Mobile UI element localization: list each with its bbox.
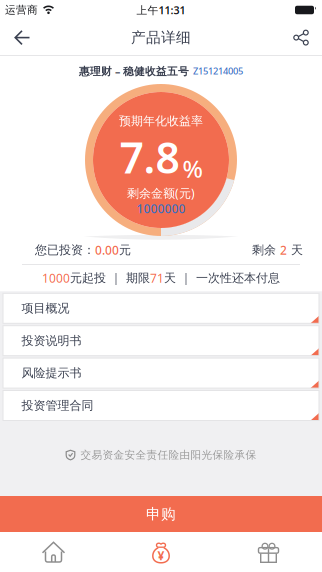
staticText: 交易资金安全责任险由阳光保险承保 [80, 448, 256, 462]
staticText: 运营商 [5, 3, 38, 16]
staticText: 2 [280, 242, 287, 258]
staticText: 1000000 [136, 200, 185, 216]
staticText: 0.00 [95, 242, 119, 258]
staticText: 申购 [146, 505, 176, 523]
staticText: 7.8 [119, 129, 179, 185]
button[interactable]: 投资管理合同 [3, 390, 319, 420]
staticText: 项目概况 [21, 301, 69, 316]
staticText: 1000 [42, 270, 70, 286]
button[interactable]: Share [293, 21, 322, 55]
button[interactable]: 申购 [0, 496, 322, 532]
staticText: 您已投资： [35, 243, 95, 257]
staticText: 剩余 [252, 243, 280, 257]
button[interactable]: 理财 [107, 532, 215, 572]
staticText: 惠理财 – 稳健收益五号 [79, 64, 189, 78]
staticText: 上午11:31 [136, 3, 185, 17]
staticText: 元 [119, 243, 131, 257]
staticText: 天 [287, 243, 303, 257]
staticText: 投资说明书 [21, 333, 81, 348]
staticText: ¥ [157, 547, 164, 563]
staticText: 剩余金额(元) [127, 185, 195, 201]
button[interactable]: 风险提示书 [3, 358, 319, 388]
button[interactable]: 投资说明书 [3, 326, 319, 356]
staticText: 风险提示书 [21, 366, 81, 380]
staticText: 预期年化收益率 [119, 114, 203, 128]
button[interactable]: 活动 [215, 532, 322, 572]
button[interactable]: 首页 [0, 532, 107, 572]
staticText: 产品详细 [131, 29, 191, 47]
staticText: % [182, 152, 202, 184]
button[interactable]: 项目概况 [3, 293, 319, 323]
staticText: 71 [150, 270, 164, 286]
staticText: 天 ｜ 一次性还本付息 [164, 271, 280, 285]
staticText: 投资管理合同 [21, 398, 93, 413]
staticText: Z151214005 [193, 65, 243, 77]
staticText: 元起投 ｜ 期限 [70, 271, 150, 285]
button[interactable]: Back [0, 20, 30, 56]
